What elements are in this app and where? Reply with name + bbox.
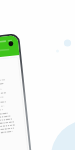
- button[interactable]: Phone mockup illustration: [0, 0, 75, 150]
